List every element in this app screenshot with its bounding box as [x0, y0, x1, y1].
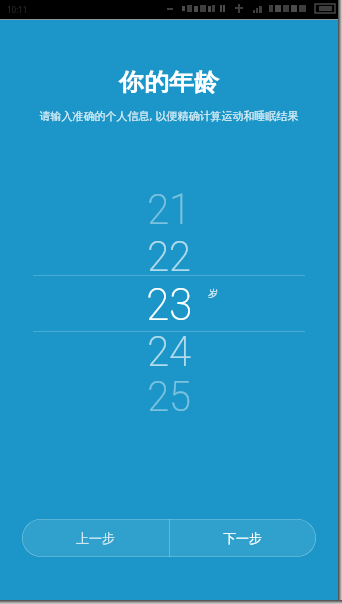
button[interactable]: 下一步	[169, 519, 316, 557]
staticText: 上一步	[76, 530, 115, 546]
staticText: 23	[146, 279, 193, 331]
staticText: 21	[147, 185, 192, 234]
staticText: 22	[147, 232, 192, 281]
staticText: 请输入准确的个人信息, 以便精确计算运动和睡眠结果	[0, 108, 338, 123]
staticText: 下一步	[223, 530, 262, 546]
staticText: 岁	[208, 287, 218, 300]
staticText: 你的年龄	[119, 68, 219, 97]
staticText: 24	[147, 327, 192, 376]
staticText: 25	[147, 372, 192, 421]
staticText: 10:11	[7, 4, 28, 15]
button[interactable]: 上一步	[22, 519, 169, 557]
